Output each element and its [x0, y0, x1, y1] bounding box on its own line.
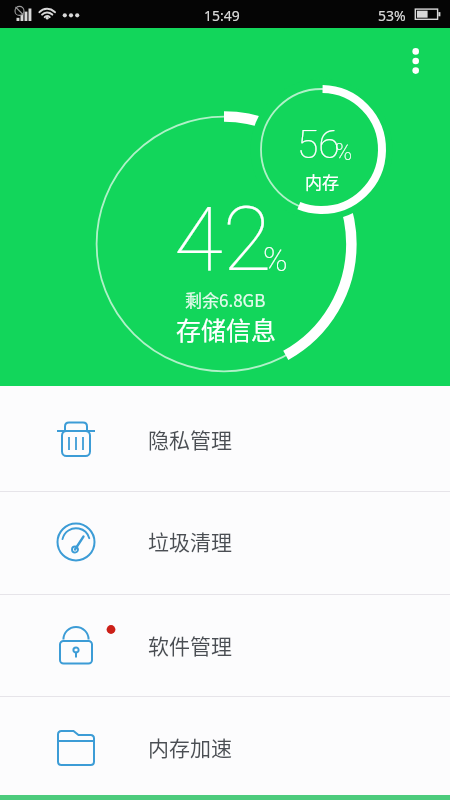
button[interactable]: 软件管理 — [0, 595, 450, 696]
staticText: 软件管理 — [148, 630, 232, 660]
button[interactable]: 隐私管理 — [0, 386, 450, 491]
staticText: 存储信息 — [176, 311, 277, 347]
staticText: 垃圾清理 — [148, 526, 232, 556]
staticText: 42 — [174, 187, 272, 291]
button[interactable]: More options — [393, 39, 437, 83]
staticText: 内存加速 — [148, 732, 232, 762]
staticText: 15:49 — [204, 6, 240, 25]
button[interactable]: 垃圾清理 — [0, 492, 450, 594]
staticText: 剩余6.8GB — [185, 287, 266, 312]
staticText: 53% — [378, 6, 406, 25]
staticText: 56 — [297, 122, 340, 168]
button[interactable]: 内存加速 — [0, 697, 450, 795]
staticText: % — [335, 139, 353, 166]
staticText: 隐私管理 — [148, 424, 232, 454]
staticText: % — [263, 240, 288, 279]
staticText: 内存 — [305, 169, 339, 194]
